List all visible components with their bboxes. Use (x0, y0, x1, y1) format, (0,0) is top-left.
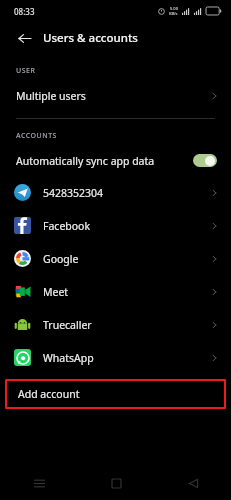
button[interactable]: Add account (7, 381, 224, 407)
staticText: Automatically sync app data (16, 154, 193, 168)
button[interactable]: Recent apps (24, 468, 54, 498)
button[interactable]: Multiple users (0, 80, 231, 111)
staticText: Multiple users (16, 89, 209, 103)
staticText: USER (16, 66, 36, 76)
button[interactable]: Truecaller (0, 308, 231, 341)
button[interactable]: 5428352304 (0, 176, 231, 209)
staticText: ACCOUNTS (16, 131, 57, 141)
button[interactable]: Meet (0, 275, 231, 308)
button[interactable]: Back (13, 27, 35, 49)
staticText: Add account (18, 387, 80, 401)
button[interactable]: Google (0, 242, 231, 275)
button[interactable]: Facebook (0, 209, 231, 242)
button[interactable]: Automatically sync app data (0, 145, 231, 176)
staticText: Facebook (43, 219, 209, 233)
staticText: 5.00 (170, 6, 178, 11)
staticText: WhatsApp (43, 351, 209, 365)
button[interactable]: Home (101, 468, 131, 498)
staticText: 5428352304 (43, 186, 209, 200)
button[interactable]: WhatsApp (0, 341, 231, 374)
staticText: Google (43, 252, 209, 266)
staticText: Truecaller (43, 318, 209, 332)
staticText: Meet (43, 285, 209, 299)
staticText: 08:33 (14, 6, 35, 17)
staticText: KB/s (169, 11, 178, 16)
staticText: Users & accounts (43, 30, 138, 46)
button[interactable]: Back (178, 468, 208, 498)
